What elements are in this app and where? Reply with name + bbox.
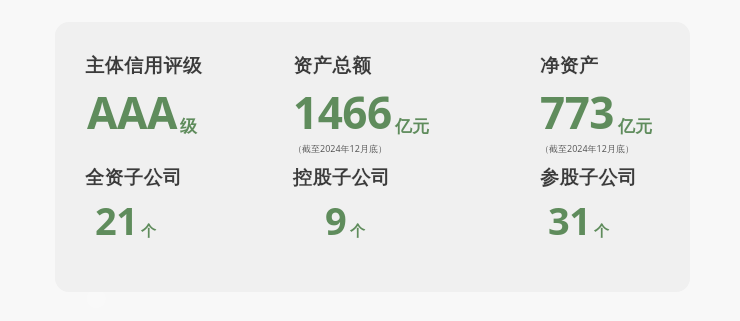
staticText: 31 [548, 194, 591, 246]
staticText: （截至2024年12月底） [540, 142, 634, 154]
staticText: 个 [350, 222, 365, 241]
staticText: 个 [594, 222, 609, 241]
staticText: 亿元 [395, 116, 429, 137]
button[interactable]: 主体信用评级 [55, 22, 690, 292]
staticText: 全资子公司 [85, 166, 183, 190]
staticText: 参股子公司 [540, 166, 638, 190]
staticText: 控股子公司 [293, 166, 391, 190]
staticText: 773 [540, 82, 615, 142]
staticText: （截至2024年12月底） [293, 142, 387, 154]
staticText: 21 [95, 194, 138, 246]
staticText: 亿元 [618, 116, 652, 137]
button[interactable]: 参股子公司 [540, 166, 638, 246]
staticText: 个 [141, 222, 156, 241]
button[interactable]: 净资产 [540, 54, 652, 154]
staticText: 1466 [293, 82, 392, 142]
staticText: 级 [180, 116, 197, 137]
staticText: 净资产 [540, 54, 599, 78]
staticText: AAA [87, 82, 177, 142]
staticText: 9 [325, 194, 347, 246]
button[interactable]: 控股子公司 [293, 166, 391, 246]
staticText: 资产总额 [293, 54, 371, 78]
staticText: 主体信用评级 [85, 54, 202, 78]
button[interactable]: 主体信用评级 [85, 54, 202, 142]
button[interactable]: 全资子公司 [85, 166, 183, 246]
button[interactable]: 资产总额 [293, 54, 429, 154]
